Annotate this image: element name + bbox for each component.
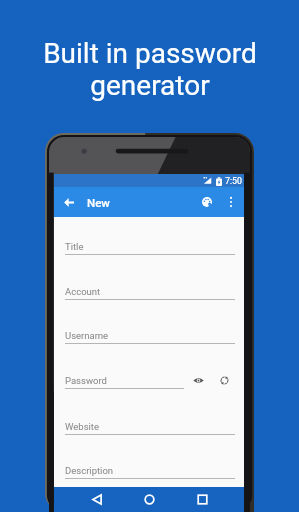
staticText: Username <box>65 330 109 341</box>
button[interactable]: Recents <box>189 487 215 512</box>
button[interactable]: Description <box>65 465 235 479</box>
staticText: Title <box>65 241 84 252</box>
staticText: Password <box>65 375 107 386</box>
staticText: Description <box>65 465 114 476</box>
staticText: New <box>87 196 110 209</box>
staticText: Built in password generator <box>43 37 257 102</box>
button[interactable]: Theme colour <box>197 187 217 217</box>
staticText: 7:50 <box>225 176 242 186</box>
button[interactable]: Title <box>65 241 235 255</box>
button[interactable]: Password <box>65 375 184 389</box>
button[interactable]: Back <box>84 487 110 512</box>
button[interactable]: Website <box>65 421 235 435</box>
button[interactable]: Generate password <box>216 372 232 388</box>
button[interactable]: Home <box>136 487 162 512</box>
staticText: Account <box>65 286 101 297</box>
staticText: Website <box>65 421 100 432</box>
button[interactable]: Back <box>54 187 84 217</box>
button[interactable]: Account <box>65 286 235 300</box>
button[interactable]: More options <box>217 187 245 217</box>
button[interactable]: Show password <box>190 372 206 388</box>
button[interactable]: Username <box>65 330 235 344</box>
